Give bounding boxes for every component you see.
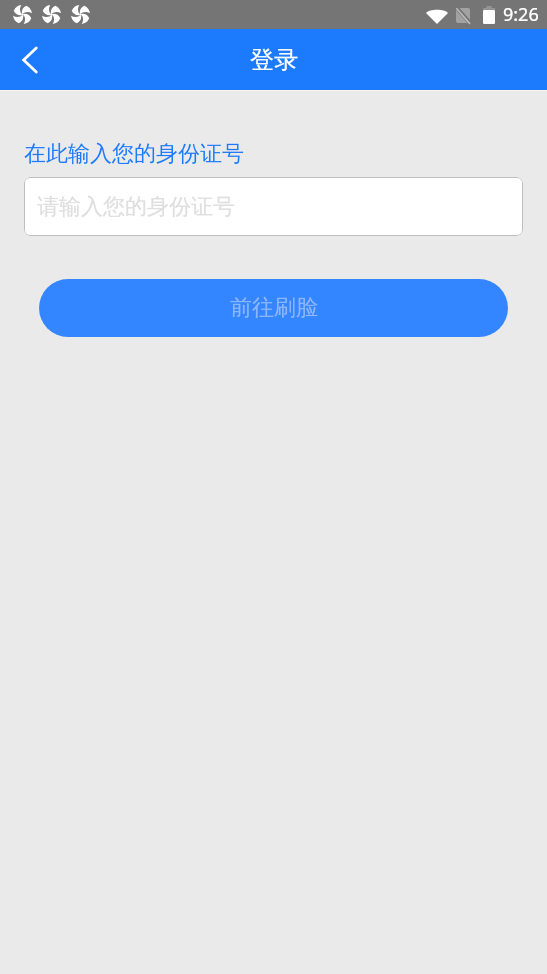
staticText: 请输入您的身份证号 — [37, 193, 235, 221]
button[interactable]: 请输入您的身份证号 — [24, 177, 523, 236]
staticText: 在此输入您的身份证号 — [24, 140, 244, 168]
staticText: 9:26 — [503, 2, 539, 27]
button[interactable]: Back — [0, 31, 58, 89]
button[interactable]: 前往刷脸 — [39, 279, 508, 337]
staticText: 登录 — [250, 45, 298, 75]
staticText: 前往刷脸 — [230, 294, 318, 322]
